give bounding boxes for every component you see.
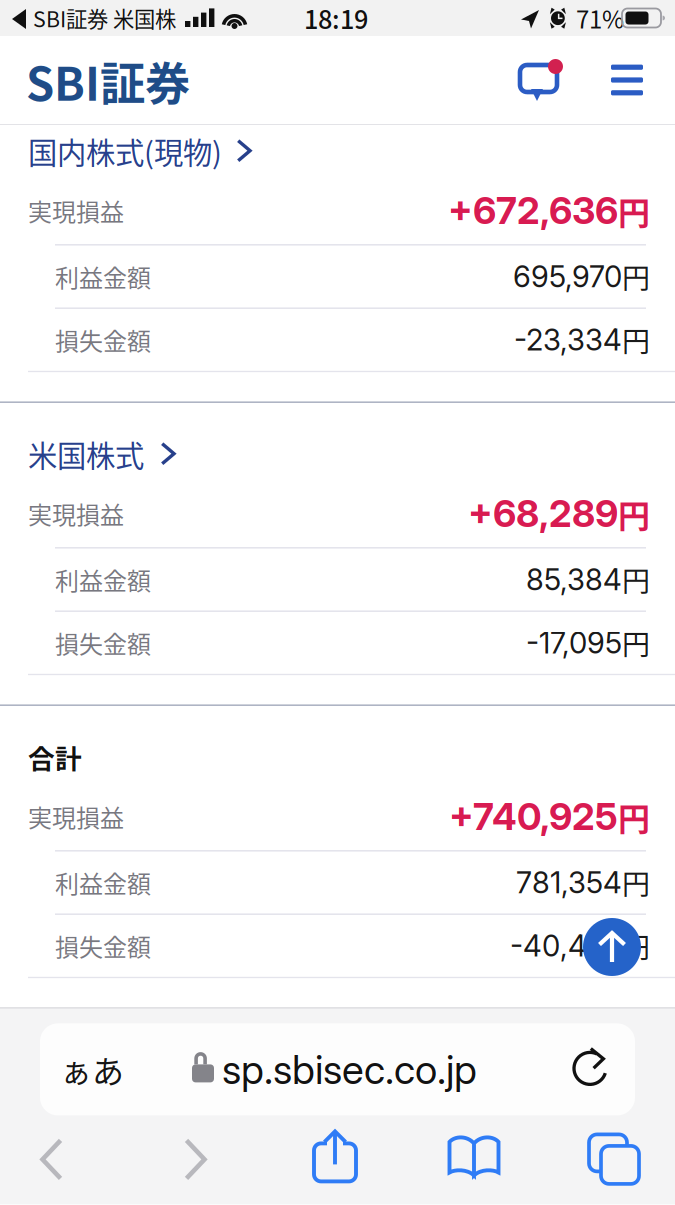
staticText: ぁあ	[60, 1046, 124, 1092]
staticText: 実現損益	[28, 496, 124, 531]
staticText: sp.sbisec.co.jp	[222, 1045, 477, 1094]
staticText: 国内株式(現物)	[28, 130, 222, 172]
staticText: 85,384	[526, 562, 622, 597]
staticText: +68,289	[468, 491, 618, 536]
staticText: 円	[618, 490, 650, 537]
staticText: 695,970	[513, 259, 622, 294]
staticText: 利益金額	[55, 562, 151, 597]
staticText: 円	[618, 793, 650, 840]
staticText: 実現損益	[28, 799, 124, 834]
button[interactable]: Reload	[549, 1021, 635, 1113]
staticText: 損失金額	[55, 322, 151, 357]
staticText: 円	[622, 256, 650, 297]
button[interactable]: Forward	[147, 1123, 243, 1195]
button[interactable]: 米国株式	[0, 428, 675, 480]
staticText: 781,354	[516, 865, 622, 900]
button[interactable]: Bookmarks	[426, 1120, 522, 1192]
staticText: +672,636	[448, 188, 618, 233]
staticText: 実現損益	[28, 193, 124, 228]
staticText: 利益金額	[55, 865, 151, 900]
staticText: -40,429	[510, 928, 622, 964]
staticText: 損失金額	[55, 625, 151, 660]
button[interactable]: Back	[4, 1123, 100, 1195]
staticText: +740,925	[449, 794, 618, 839]
staticText: 円	[622, 623, 650, 663]
staticText: 円	[622, 559, 650, 600]
staticText: 利益金額	[55, 259, 151, 294]
staticText: 円	[622, 320, 650, 360]
staticText: -17,095	[526, 625, 622, 661]
button[interactable]: Menu	[604, 57, 650, 103]
staticText: 円	[618, 187, 650, 234]
button[interactable]: Scroll to top	[583, 918, 641, 976]
staticText: 合計	[28, 738, 82, 776]
button[interactable]: Tabs	[566, 1123, 662, 1195]
staticText: 18:19	[304, 0, 368, 36]
staticText: 損失金額	[55, 928, 151, 963]
button[interactable]: Share	[287, 1120, 383, 1192]
staticText: SBI証券	[26, 48, 190, 114]
staticText: -23,334	[514, 322, 622, 358]
staticText: 米国株式	[28, 433, 144, 475]
staticText: 円	[622, 926, 650, 966]
button[interactable]: Page settings	[42, 1023, 142, 1115]
staticText: 71%	[576, 1, 624, 35]
button[interactable]: Notifications	[516, 59, 562, 105]
staticText: SBI証券 米国株	[33, 3, 176, 33]
button[interactable]: 国内株式(現物)	[0, 125, 675, 177]
staticText: 円	[622, 862, 650, 903]
